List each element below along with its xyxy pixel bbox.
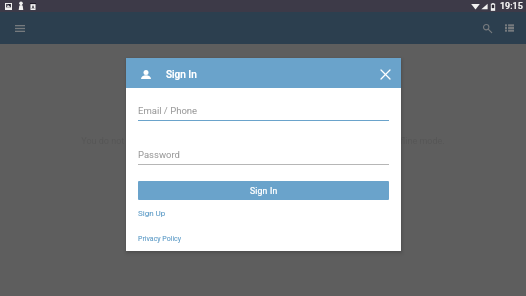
staticText: You do not have any data to show. Please… — [81, 136, 445, 147]
button[interactable]: Privacy Policy — [138, 233, 182, 245]
button[interactable]: Sign Up — [138, 207, 166, 220]
button[interactable]: Open navigation menu — [9, 17, 31, 39]
staticText: Sign In — [250, 186, 278, 196]
button[interactable]: List view — [498, 17, 520, 39]
staticText: Sign Up — [138, 209, 166, 218]
staticText: 19:15 — [500, 1, 523, 12]
staticText: Password — [138, 149, 180, 160]
staticText: Email / Phone — [138, 105, 198, 116]
staticText: Sign In — [166, 69, 197, 81]
button[interactable]: Search — [476, 17, 498, 39]
button[interactable]: Close — [374, 63, 396, 85]
staticText: Privacy Policy — [138, 235, 182, 243]
button[interactable]: Sign In — [138, 181, 389, 200]
